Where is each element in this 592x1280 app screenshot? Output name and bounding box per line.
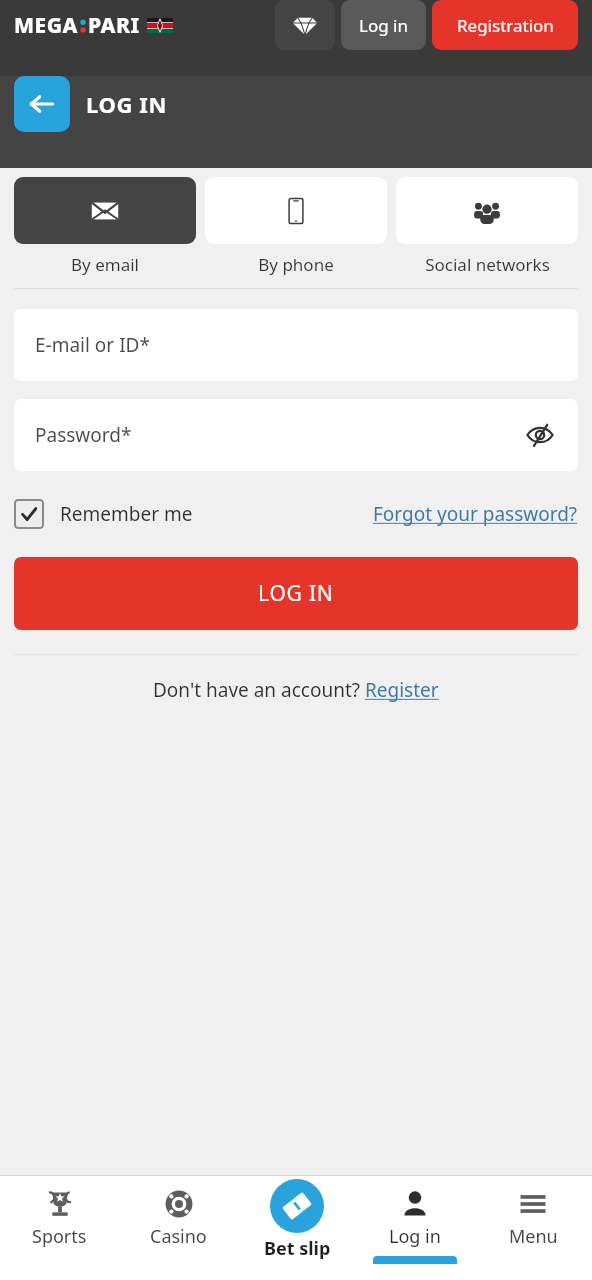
staticText: By email bbox=[71, 253, 139, 276]
button[interactable]: Remember me bbox=[14, 499, 193, 529]
button[interactable]: Menu bbox=[474, 1176, 592, 1280]
button[interactable]: Back bbox=[14, 76, 70, 132]
staticText: Bet slip bbox=[264, 1236, 331, 1261]
button[interactable]: E-mail or ID* bbox=[14, 309, 578, 381]
button[interactable]: Log in bbox=[341, 0, 426, 50]
staticText: Log in bbox=[359, 14, 408, 37]
button[interactable]: Password* bbox=[14, 399, 578, 471]
button[interactable]: Forgot your password? bbox=[373, 501, 578, 527]
button[interactable]: Social networks bbox=[396, 177, 578, 276]
staticText: Forgot your password? bbox=[373, 501, 578, 527]
staticText: Casino bbox=[150, 1224, 207, 1249]
staticText: Don't have an account? bbox=[153, 677, 365, 703]
button[interactable]: Casino bbox=[119, 1176, 238, 1280]
staticText: Registration bbox=[457, 14, 554, 37]
staticText: Social networks bbox=[425, 253, 550, 276]
button[interactable]: By phone bbox=[205, 177, 387, 276]
staticText: Sports bbox=[32, 1224, 87, 1249]
button[interactable]: LOG IN bbox=[14, 557, 578, 630]
staticText: LOG IN bbox=[258, 579, 334, 608]
staticText: Register bbox=[365, 677, 439, 703]
button[interactable]: By email bbox=[14, 177, 196, 276]
staticText: By phone bbox=[258, 253, 334, 276]
button[interactable]: Sports bbox=[0, 1176, 119, 1280]
button[interactable]: Promotions bbox=[275, 0, 335, 50]
staticText: E-mail or ID* bbox=[35, 332, 150, 358]
staticText: PARI bbox=[88, 11, 140, 40]
staticText: Log in bbox=[389, 1224, 441, 1249]
button[interactable]: Register bbox=[365, 677, 439, 703]
staticText: MEGA bbox=[14, 11, 78, 40]
staticText: Password* bbox=[35, 422, 132, 448]
button[interactable]: Bet slip bbox=[238, 1176, 356, 1280]
button[interactable]: Log in bbox=[356, 1176, 474, 1280]
staticText: LOG IN bbox=[86, 89, 167, 119]
button[interactable]: Registration bbox=[432, 0, 578, 50]
staticText: Remember me bbox=[60, 501, 193, 527]
button[interactable]: Show password bbox=[520, 415, 560, 455]
staticText: Menu bbox=[509, 1224, 558, 1249]
